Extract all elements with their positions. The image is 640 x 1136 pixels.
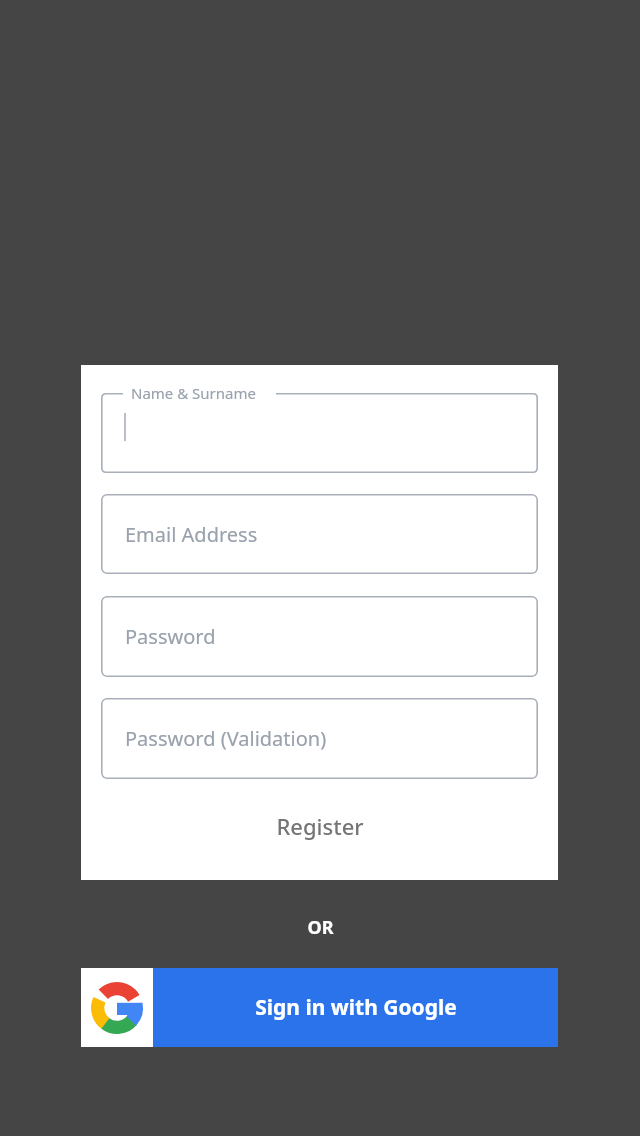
button[interactable]: Email Address [101, 494, 538, 574]
button[interactable]: Password [101, 596, 538, 677]
staticText: Password [125, 623, 216, 650]
staticText: Sign in with Google [255, 993, 457, 1022]
button[interactable]: Name & Surname [101, 393, 538, 473]
staticText: Name & Surname [131, 383, 256, 403]
button[interactable]: Password (Validation) [101, 698, 538, 779]
staticText: OR [307, 915, 334, 940]
button[interactable]: Sign in with Google [81, 968, 558, 1047]
staticText: Register [276, 811, 364, 841]
staticText: Password (Validation) [125, 725, 327, 752]
staticText: Email Address [125, 521, 258, 548]
button[interactable]: Register [101, 795, 538, 857]
